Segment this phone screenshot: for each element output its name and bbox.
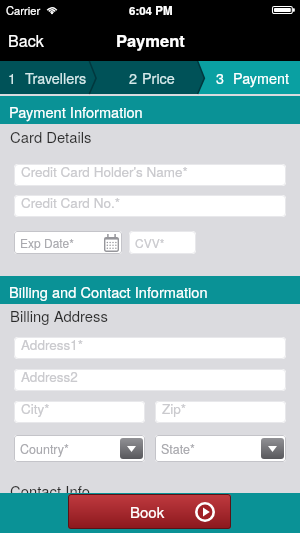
staticText: Card Details bbox=[10, 126, 92, 147]
staticText: Book bbox=[130, 501, 165, 522]
button[interactable]: Open State* list bbox=[261, 438, 284, 459]
other: Pick date bbox=[104, 234, 119, 252]
staticText: Payment bbox=[233, 67, 289, 88]
staticText: Zip* bbox=[162, 401, 187, 418]
button[interactable]: Book bbox=[68, 494, 231, 529]
staticText: Address1* bbox=[21, 337, 84, 354]
staticText: 2 bbox=[129, 67, 138, 88]
staticText: Payment bbox=[116, 28, 185, 52]
staticText: Contact Info bbox=[10, 480, 90, 501]
button[interactable]: Zip* bbox=[155, 401, 286, 423]
staticText: Billing and Contact Information bbox=[9, 281, 208, 302]
button[interactable]: Address2 bbox=[14, 369, 286, 391]
staticText: 6:04 PM bbox=[129, 2, 173, 18]
staticText: Carrier bbox=[6, 2, 41, 18]
button[interactable]: Country* bbox=[14, 435, 145, 462]
staticText: State* bbox=[161, 440, 195, 458]
staticText: 3 bbox=[216, 67, 225, 88]
staticText: City* bbox=[21, 401, 50, 418]
button[interactable]: 1 bbox=[0, 61, 87, 94]
staticText: 1 bbox=[8, 67, 17, 88]
button[interactable]: Address1* bbox=[14, 337, 286, 359]
staticText: Back bbox=[8, 29, 44, 52]
staticText: CVV* bbox=[135, 234, 165, 251]
staticText: Payment Information bbox=[9, 101, 143, 122]
button[interactable]: Exp Date* bbox=[14, 231, 122, 254]
staticText: Exp Date* bbox=[20, 234, 74, 251]
staticText: Address2 bbox=[21, 369, 78, 386]
staticText: Credit Card No.* bbox=[21, 195, 120, 212]
button[interactable]: 3 bbox=[208, 61, 295, 94]
staticText: Credit Card Holder's Name* bbox=[21, 164, 188, 181]
button[interactable]: Credit Card No.* bbox=[14, 195, 286, 217]
button[interactable]: Credit Card Holder's Name* bbox=[14, 164, 286, 186]
button[interactable]: Open Country* list bbox=[120, 438, 143, 459]
staticText: Billing Address bbox=[10, 305, 108, 326]
button[interactable]: City* bbox=[14, 401, 145, 423]
other: Battery full bbox=[272, 6, 295, 14]
staticText: Country* bbox=[20, 440, 69, 458]
other: Wi-Fi bbox=[46, 6, 58, 14]
staticText: Travellers bbox=[25, 67, 87, 88]
button[interactable]: State* bbox=[155, 435, 286, 462]
button[interactable]: 2 bbox=[121, 61, 204, 94]
button[interactable]: CVV* bbox=[129, 231, 196, 254]
staticText: Price bbox=[142, 67, 175, 88]
button[interactable]: Back bbox=[1, 24, 51, 57]
